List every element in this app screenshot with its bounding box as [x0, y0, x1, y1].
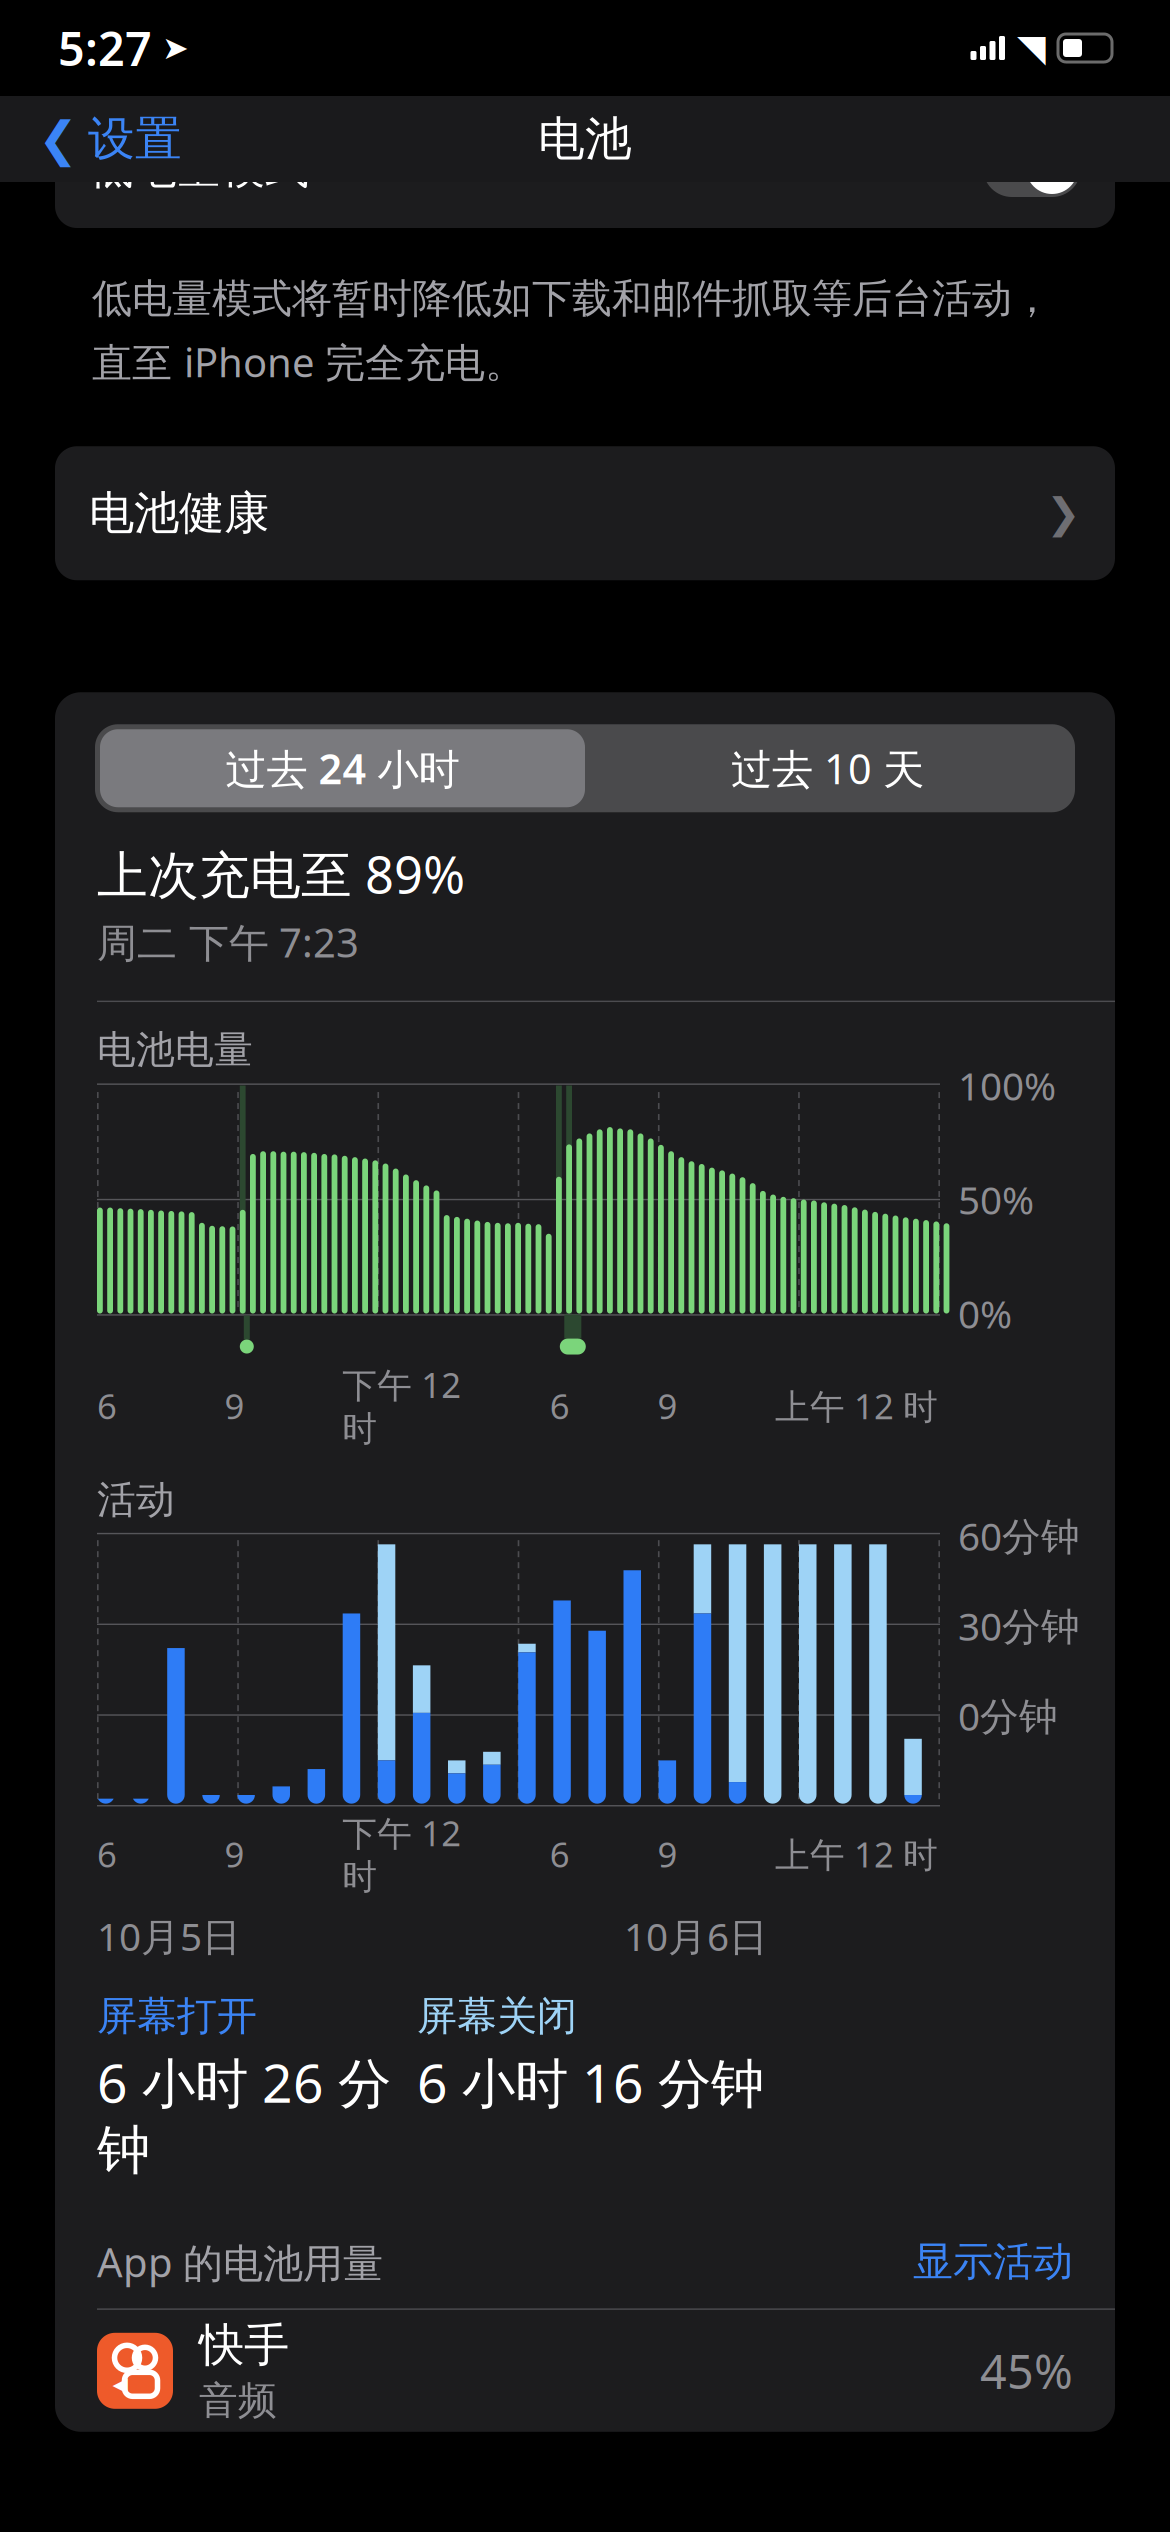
staticText: 下午 12 时 [342, 1810, 461, 1898]
staticText: 6 [550, 1831, 570, 1877]
staticText: 50% [958, 1174, 1034, 1225]
staticText: 屏幕打开 [97, 1992, 257, 2041]
staticText: 6 小时 26 分钟 [97, 2047, 391, 2183]
staticText: ◥ [1017, 27, 1046, 69]
staticText: ❯ [1046, 490, 1081, 537]
button[interactable]: 显示活动 [913, 2237, 1073, 2286]
staticText: 上午 12 时 [775, 1383, 938, 1429]
staticText: 6 [97, 1383, 117, 1429]
staticText: 9 [225, 1831, 245, 1877]
staticText: 活动 [97, 1476, 175, 1524]
staticText: 设置 [88, 110, 182, 168]
staticText: 过去 24 小时 [225, 741, 459, 796]
staticText: 9 [657, 1383, 677, 1429]
staticText: 低电量模式将暂时降低如下载和邮件抓取等后台活动， 直至 iPhone 完全充电。 [92, 274, 1052, 388]
staticText: 9 [225, 1383, 245, 1429]
staticText: 音频 [199, 2377, 277, 2424]
staticText: 上次充电至 89% [97, 840, 465, 907]
staticText: 0分钟 [958, 1690, 1058, 1741]
staticText: 30分钟 [958, 1600, 1080, 1651]
button[interactable]: 电池健康 [55, 446, 1115, 580]
button[interactable]: ❮ [32, 96, 188, 182]
staticText: 10月5日 [97, 1910, 241, 1962]
staticText: 快手 [199, 2317, 289, 2373]
staticText: 6 小时 16 分钟 [417, 2047, 764, 2118]
staticText: 6 [550, 1383, 570, 1429]
staticText: 上午 12 时 [775, 1831, 938, 1877]
staticText: 下午 12 时 [342, 1361, 461, 1450]
button[interactable]: 过去 24 小时 [100, 729, 585, 807]
staticText: 9 [657, 1831, 677, 1877]
staticText: 6 [97, 1831, 117, 1877]
staticText: 10月6日 [624, 1910, 768, 1962]
staticText: ◀ [112, 2373, 127, 2396]
staticText: 过去 10 天 [731, 741, 924, 796]
staticText: 45% [980, 2340, 1073, 2402]
staticText: 电池 [538, 110, 632, 168]
button[interactable]: ◀ [55, 2310, 1115, 2432]
staticText: 显示活动 [913, 2237, 1073, 2286]
staticText: 低电量模式 [89, 141, 309, 195]
staticText: 0% [958, 1288, 1012, 1339]
button[interactable]: 过去 10 天 [585, 729, 1070, 807]
staticText: App 的电池用量 [97, 2235, 383, 2288]
staticText: ❮ [38, 112, 78, 166]
staticText: 100% [958, 1060, 1056, 1111]
staticText: 5:27 [58, 17, 152, 79]
staticText: ➤ [162, 30, 189, 66]
staticText: 屏幕关闭 [417, 1992, 577, 2041]
staticText: 60分钟 [958, 1510, 1080, 1561]
staticText: 电池电量 [97, 1026, 253, 1074]
staticText: 电池健康 [89, 485, 269, 541]
staticText: 周二 下午 7:23 [97, 915, 359, 969]
